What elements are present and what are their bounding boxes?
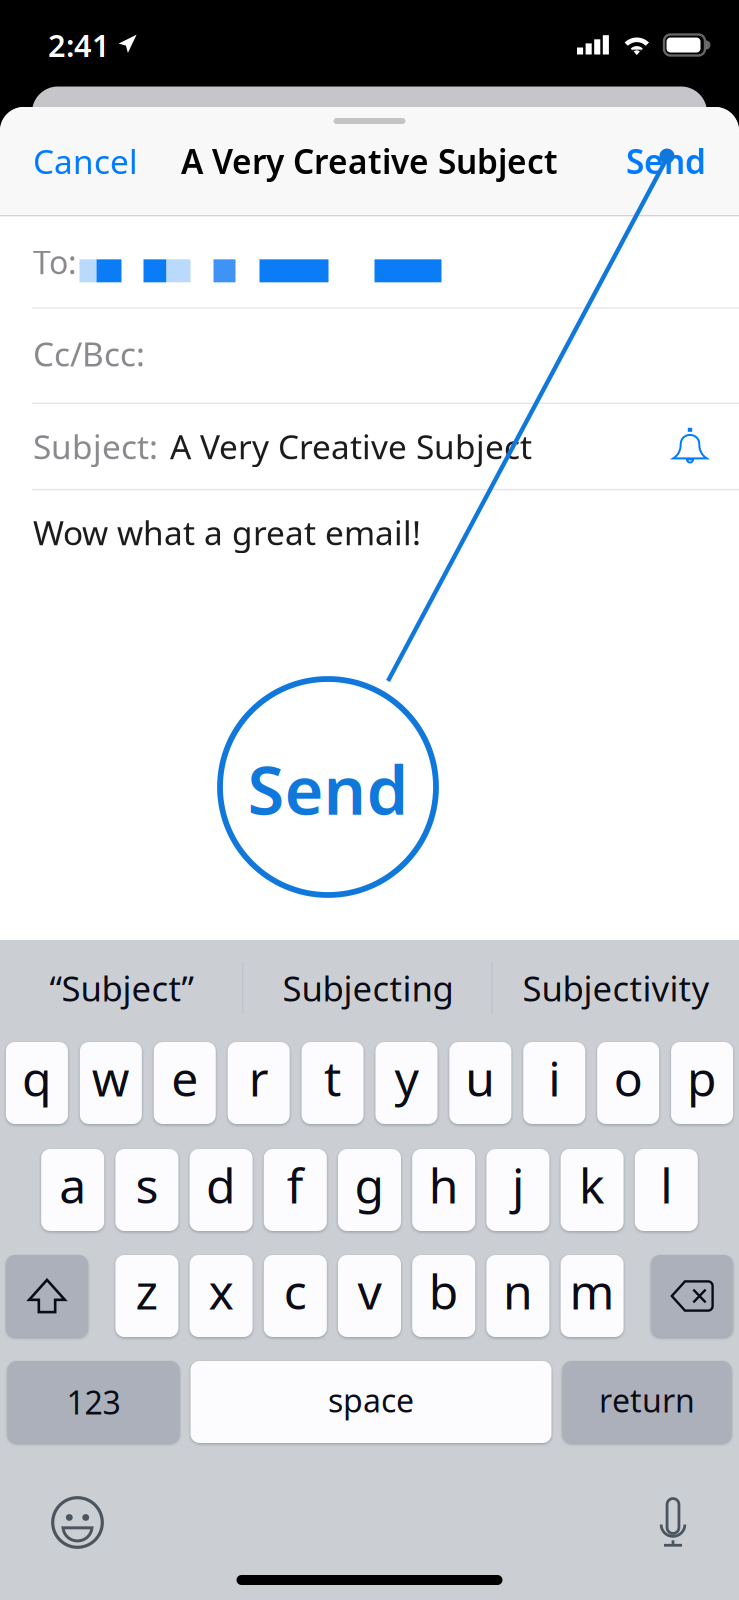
button[interactable]: Shift <box>6 1255 88 1337</box>
staticText: f <box>287 1153 304 1217</box>
staticText: j <box>512 1153 524 1217</box>
staticText: Subjectivity <box>522 965 709 1011</box>
button[interactable]: e <box>154 1042 216 1124</box>
button[interactable]: p <box>671 1042 733 1124</box>
button[interactable]: b <box>412 1255 475 1337</box>
staticText: Cc/Bcc: <box>33 331 145 376</box>
staticText: b <box>429 1259 459 1323</box>
staticText: d <box>206 1153 236 1217</box>
button[interactable]: 123 <box>7 1361 179 1443</box>
button[interactable]: z <box>115 1255 178 1337</box>
staticText: z <box>135 1259 158 1323</box>
staticText: k <box>579 1153 605 1217</box>
staticText: 2:41 <box>48 25 110 65</box>
button[interactable]: Send <box>589 125 739 197</box>
button[interactable]: Notify Me <box>671 426 709 466</box>
button[interactable]: s <box>115 1149 178 1231</box>
staticText: A Very Creative Subject <box>181 139 558 183</box>
staticText: Cancel <box>33 139 138 183</box>
button[interactable]: Subjectivity <box>493 940 739 1036</box>
button[interactable]: return <box>562 1361 731 1443</box>
button[interactable]: i <box>523 1042 585 1124</box>
button[interactable]: a <box>41 1149 104 1231</box>
button[interactable]: k <box>561 1149 624 1231</box>
staticText: “Subject” <box>49 965 193 1011</box>
button[interactable]: m <box>561 1255 624 1337</box>
staticText: w <box>92 1046 130 1110</box>
staticText: m <box>570 1259 615 1323</box>
staticText: A Very Creative Subject <box>170 424 532 469</box>
button[interactable]: n <box>486 1255 549 1337</box>
button[interactable]: h <box>412 1149 475 1231</box>
button[interactable]: c <box>264 1255 327 1337</box>
button[interactable]: w <box>80 1042 142 1124</box>
staticText: c <box>284 1259 307 1323</box>
staticText: q <box>22 1046 52 1110</box>
button[interactable]: “Subject” <box>0 940 243 1036</box>
button[interactable]: q <box>6 1042 68 1124</box>
staticText: Subject: <box>33 424 158 469</box>
button[interactable]: r <box>228 1042 290 1124</box>
button[interactable]: Emoji <box>51 1496 104 1549</box>
button[interactable]: v <box>338 1255 401 1337</box>
button[interactable]: f <box>264 1149 327 1231</box>
staticText: To: <box>33 241 77 283</box>
staticText: n <box>503 1259 533 1323</box>
button[interactable]: y <box>375 1042 437 1124</box>
staticText: l <box>660 1153 672 1217</box>
staticText: 123 <box>66 1381 120 1423</box>
staticText: g <box>354 1153 384 1217</box>
button[interactable]: t <box>302 1042 364 1124</box>
staticText: t <box>324 1046 341 1110</box>
button[interactable]: j <box>486 1149 549 1231</box>
staticText: h <box>429 1153 459 1217</box>
staticText: v <box>357 1259 381 1323</box>
staticText: e <box>171 1046 198 1110</box>
button[interactable]: l <box>635 1149 698 1231</box>
staticText: x <box>209 1259 234 1323</box>
button[interactable]: Subjecting <box>243 940 493 1036</box>
button[interactable]: Cancel <box>0 125 168 197</box>
staticText: Wow what a great email! <box>33 510 421 554</box>
staticText: Subjecting <box>282 965 453 1011</box>
button[interactable]: Delete <box>651 1255 733 1337</box>
staticText: return <box>599 1379 695 1421</box>
staticText: o <box>614 1046 643 1110</box>
staticText: a <box>59 1153 86 1217</box>
button[interactable]: space <box>190 1361 551 1443</box>
staticText: u <box>465 1046 495 1110</box>
staticText: p <box>687 1046 717 1110</box>
staticText: i <box>548 1046 560 1110</box>
staticText: Send <box>247 745 408 833</box>
staticText: Send <box>626 139 706 183</box>
staticText: s <box>135 1153 158 1217</box>
staticText: y <box>394 1046 418 1110</box>
button[interactable]: u <box>449 1042 511 1124</box>
button[interactable]: o <box>597 1042 659 1124</box>
staticText: r <box>249 1046 269 1110</box>
button[interactable]: Dictation <box>655 1497 691 1547</box>
button[interactable]: g <box>338 1149 401 1231</box>
staticText: space <box>328 1379 414 1421</box>
button[interactable]: d <box>190 1149 253 1231</box>
button[interactable]: x <box>190 1255 253 1337</box>
